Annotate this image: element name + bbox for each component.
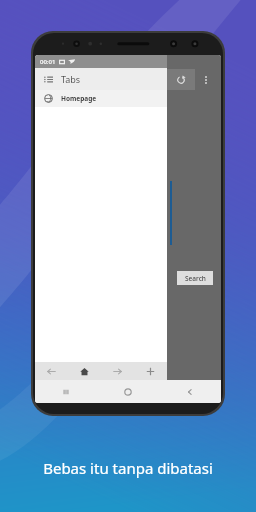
staticText: Search <box>185 274 206 283</box>
staticText: Bebas itu tanpa dibatasi <box>43 458 213 478</box>
button[interactable]: Back <box>159 380 221 403</box>
button[interactable]: Forward <box>101 362 134 380</box>
staticText: Homepage <box>61 94 97 103</box>
button[interactable]: Homepage <box>35 90 221 107</box>
staticText: 00:01 <box>40 58 56 66</box>
button[interactable]: Tab list <box>35 68 61 90</box>
button[interactable]: Home <box>68 362 101 380</box>
button[interactable]: Reload <box>167 69 195 90</box>
button[interactable]: Search <box>177 271 213 285</box>
staticText: Tabs <box>61 73 81 85</box>
button[interactable]: Recents <box>35 380 97 403</box>
button[interactable]: Home <box>97 380 159 403</box>
button[interactable]: More options <box>195 69 217 90</box>
button[interactable]: New tab <box>134 362 167 380</box>
button[interactable]: Back <box>35 362 68 380</box>
